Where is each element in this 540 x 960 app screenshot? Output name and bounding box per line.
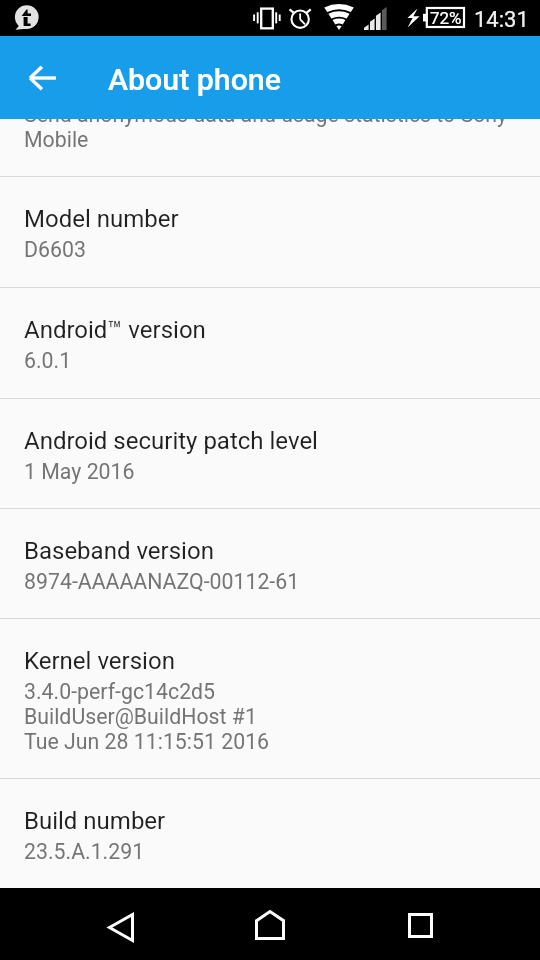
staticText: Android security patch level: [24, 427, 318, 455]
button[interactable]: Model number: [0, 177, 540, 287]
button[interactable]: Home: [233, 888, 306, 960]
button[interactable]: Kernel version: [0, 619, 540, 778]
staticText: 3.4.0-perf-gc14c2d5: [24, 679, 216, 704]
staticText: About phone: [108, 62, 281, 98]
staticText: 23.5.A.1.291: [24, 839, 145, 864]
button[interactable]: Android security patch level: [0, 399, 540, 508]
button[interactable]: Send feedback: [0, 119, 540, 176]
staticText: Baseband version: [24, 537, 214, 565]
staticText: BuildUser@BuildHost #1: [24, 704, 257, 729]
button[interactable]: Build number: [0, 779, 540, 888]
staticText: Kernel version: [24, 647, 175, 675]
button[interactable]: Android™ version: [0, 288, 540, 398]
button[interactable]: Back: [83, 888, 156, 960]
staticText: 6.0.1: [24, 348, 72, 373]
staticText: Mobile: [24, 127, 89, 152]
staticText: Send anonymous data and usage statistics…: [24, 119, 508, 127]
staticText: Android™ version: [24, 316, 206, 344]
staticText: Tue Jun 28 11:15:51 2016: [24, 729, 270, 754]
button[interactable]: Navigate up: [18, 54, 66, 102]
staticText: 14:31: [474, 7, 529, 33]
staticText: Model number: [24, 205, 179, 233]
staticText: 8974-AAAAANAZQ-00112-61: [24, 569, 300, 594]
staticText: D6603: [24, 237, 86, 262]
staticText: 1 May 2016: [24, 459, 135, 484]
button[interactable]: Recent apps: [384, 888, 457, 960]
staticText: Build number: [24, 807, 166, 835]
button[interactable]: Baseband version: [0, 509, 540, 618]
staticText: 72%: [430, 8, 462, 28]
